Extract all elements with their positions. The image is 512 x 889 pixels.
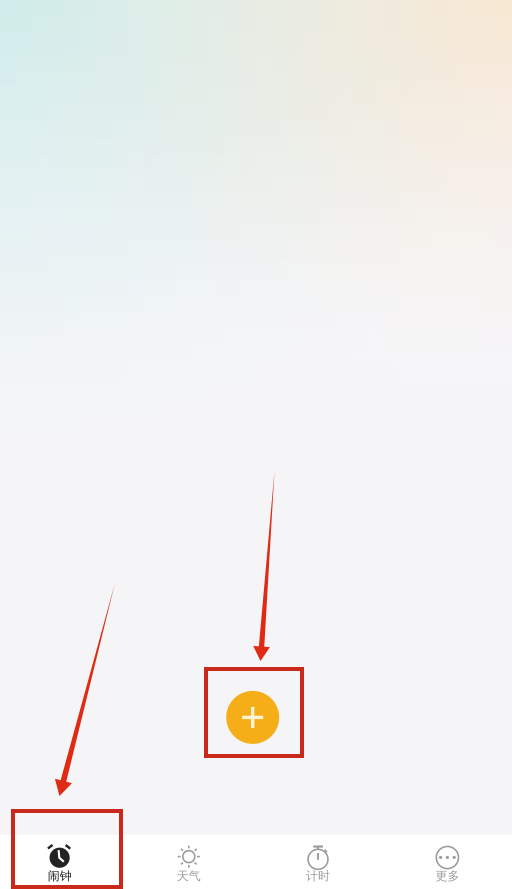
button[interactable]: 更多: [387, 837, 507, 889]
button[interactable]: 计时: [258, 837, 378, 889]
staticText: 天气: [177, 869, 201, 883]
button[interactable]: 闹钟: [0, 837, 120, 889]
staticText: 更多: [435, 869, 459, 883]
button[interactable]: 添加闹钟: [226, 691, 279, 744]
button[interactable]: 天气: [129, 837, 249, 889]
staticText: 闹钟: [48, 869, 72, 883]
staticText: 计时: [306, 869, 330, 883]
